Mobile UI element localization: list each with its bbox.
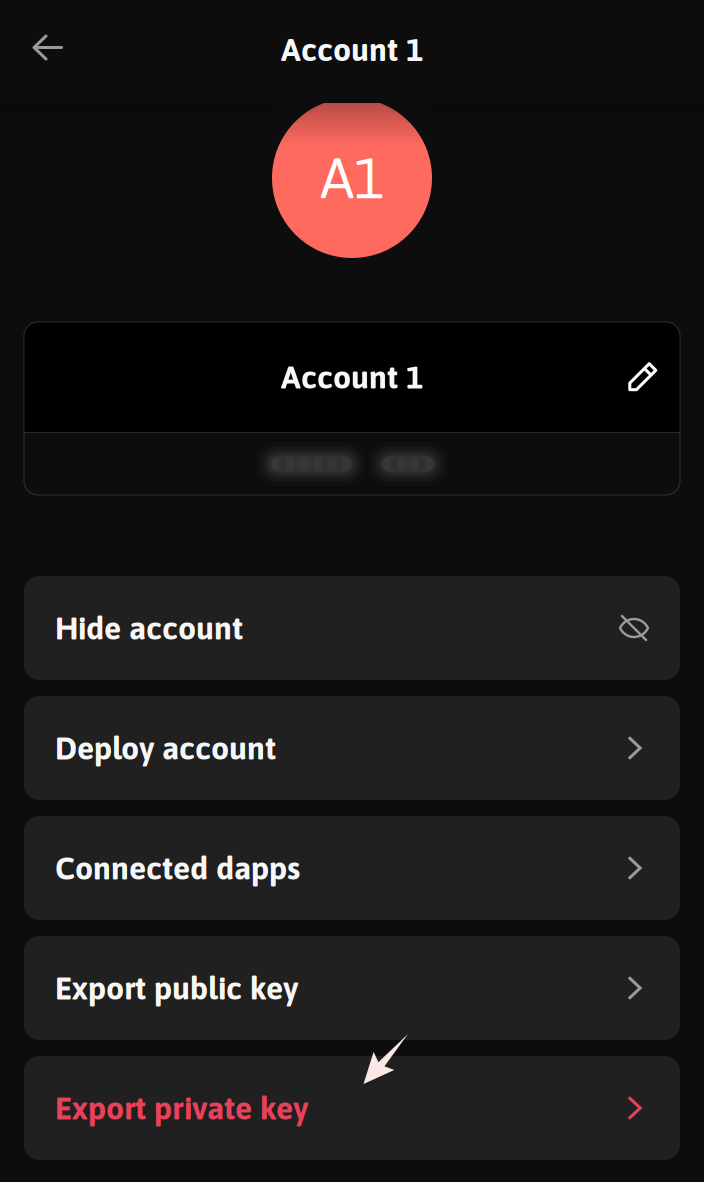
button[interactable]: Back xyxy=(16,15,80,79)
staticText: Export private key xyxy=(55,1090,308,1126)
button[interactable]: Edit account name xyxy=(628,361,658,392)
button[interactable]: Export public key xyxy=(24,936,680,1040)
button[interactable]: Deploy account xyxy=(24,696,680,800)
staticText: Deploy account xyxy=(55,730,276,766)
staticText: Account 1 xyxy=(281,359,423,395)
staticText: Connected dapps xyxy=(55,850,300,886)
staticText: Hide account xyxy=(55,610,243,646)
staticText: Account 1 xyxy=(281,31,423,68)
staticText: A1 xyxy=(320,146,384,210)
button[interactable]: Connected dapps xyxy=(24,816,680,920)
button[interactable]: Export private key xyxy=(24,1056,680,1160)
button[interactable]: Hide account xyxy=(24,576,680,680)
staticText: Export public key xyxy=(55,970,298,1006)
